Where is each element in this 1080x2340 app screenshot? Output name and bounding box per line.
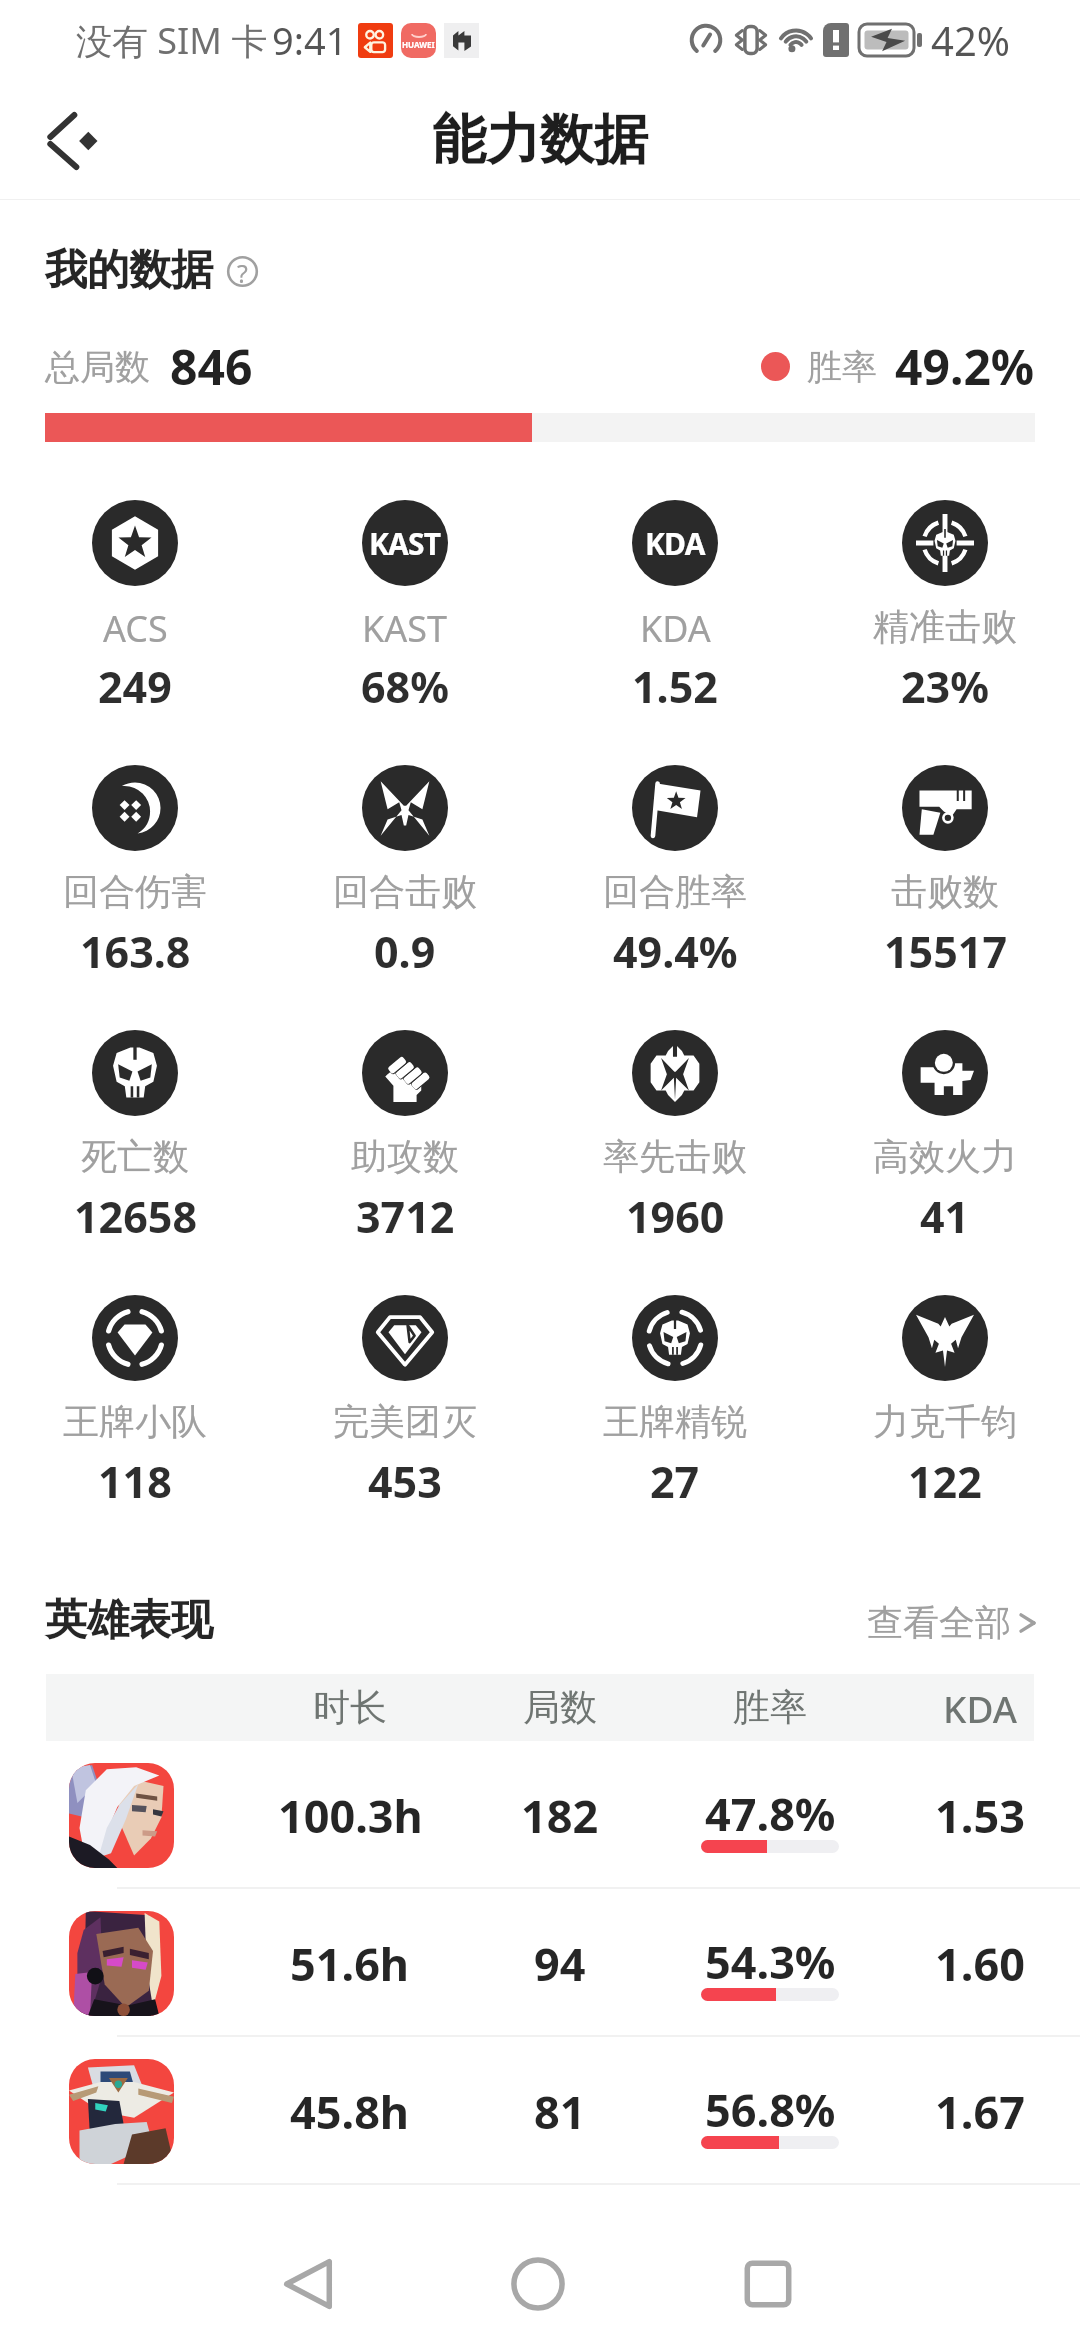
staticText: 胜率 xyxy=(807,345,877,389)
button[interactable]: Back xyxy=(248,2224,368,2340)
staticText: KDA xyxy=(943,1683,1017,1733)
staticText: 41 xyxy=(920,1187,970,1246)
staticText: 49.2% xyxy=(895,334,1035,399)
staticText: 完美团灭 xyxy=(333,1399,477,1444)
staticText: 没有 SIM 卡 xyxy=(76,16,268,65)
staticText: 68% xyxy=(361,657,449,716)
button[interactable]: Back xyxy=(24,98,108,182)
staticText: 1.67 xyxy=(935,2081,1025,2142)
button[interactable]: 回合伤害 xyxy=(0,751,270,1016)
staticText: 力克千钧 xyxy=(873,1399,1017,1444)
button[interactable]: 高效火力 xyxy=(810,1016,1080,1281)
button[interactable]: 查看全部 xyxy=(867,1600,1038,1645)
button[interactable]: KAST xyxy=(270,486,540,751)
staticText: 846 xyxy=(170,334,253,399)
staticText: HUAWEI xyxy=(402,39,435,50)
staticText: 局数 xyxy=(523,1684,597,1731)
staticText: KAST xyxy=(362,604,448,653)
staticText: 时长 xyxy=(313,1684,387,1731)
button[interactable]: 力克千钧 xyxy=(810,1281,1080,1546)
staticText: 查看全部 xyxy=(867,1600,1011,1645)
staticText: 163.8 xyxy=(80,922,191,981)
staticText: 12658 xyxy=(74,1187,197,1246)
button[interactable]: 精准击败 xyxy=(810,486,1080,751)
staticText: 122 xyxy=(908,1452,982,1511)
staticText: 56.8% xyxy=(705,2079,836,2140)
button[interactable]: ACS xyxy=(0,486,270,751)
staticText: ACS xyxy=(103,604,168,653)
button[interactable]: 率先击败 xyxy=(540,1016,810,1281)
staticText: 27 xyxy=(650,1452,700,1511)
button[interactable]: Recents xyxy=(708,2224,828,2340)
staticText: 182 xyxy=(521,1785,599,1846)
staticText: KDA xyxy=(645,523,705,564)
staticText: 453 xyxy=(368,1452,442,1511)
staticText: 49.4% xyxy=(613,922,738,981)
staticText: 15517 xyxy=(884,922,1007,981)
staticText: 总局数 xyxy=(45,345,150,389)
button[interactable]: 王牌精锐 xyxy=(540,1281,810,1546)
staticText: 高效火力 xyxy=(873,1134,1017,1179)
staticText: 1.53 xyxy=(935,1785,1025,1846)
button[interactable]: 助攻数 xyxy=(270,1016,540,1281)
staticText: 1.52 xyxy=(632,657,718,716)
staticText: 94 xyxy=(534,1933,586,1994)
staticText: 45.8h xyxy=(290,2081,410,2142)
staticText: 81 xyxy=(534,2081,586,2142)
staticText: 3712 xyxy=(356,1187,455,1246)
staticText: 249 xyxy=(98,657,172,716)
staticText: 1960 xyxy=(626,1187,725,1246)
button[interactable]: 死亡数 xyxy=(0,1016,270,1281)
staticText: 23% xyxy=(901,657,989,716)
staticText: 118 xyxy=(98,1452,172,1511)
button[interactable]: 100.3h xyxy=(0,1741,1080,1889)
staticText: 王牌小队 xyxy=(63,1399,207,1444)
button[interactable]: Home xyxy=(478,2224,598,2340)
staticText: 54.3% xyxy=(705,1931,836,1992)
staticText: KAST xyxy=(369,523,441,564)
staticText: 助攻数 xyxy=(351,1134,459,1179)
staticText: 胜率 xyxy=(733,1684,807,1731)
staticText: 9:41 xyxy=(272,14,348,66)
staticText: 精准击败 xyxy=(873,604,1017,649)
button[interactable]: 回合胜率 xyxy=(540,751,810,1016)
staticText: 1.60 xyxy=(935,1933,1025,1994)
staticText: 我的数据 xyxy=(45,244,213,297)
staticText: 100.3h xyxy=(278,1785,423,1846)
staticText: 0.9 xyxy=(374,922,436,981)
button[interactable]: 51.6h xyxy=(0,1889,1080,2037)
staticText: 率先击败 xyxy=(603,1134,747,1179)
staticText: 51.6h xyxy=(290,1933,410,1994)
button[interactable]: 王牌小队 xyxy=(0,1281,270,1546)
staticText: 回合伤害 xyxy=(63,869,207,914)
button[interactable]: KDA xyxy=(540,486,810,751)
staticText: 英雄表现 xyxy=(45,1594,213,1647)
button[interactable]: 完美团灭 xyxy=(270,1281,540,1546)
staticText: 回合胜率 xyxy=(603,869,747,914)
staticText: 死亡数 xyxy=(81,1134,189,1179)
button[interactable]: 回合击败 xyxy=(270,751,540,1016)
staticText: 回合击败 xyxy=(333,869,477,914)
staticText: 42% xyxy=(931,13,1010,67)
staticText: ? xyxy=(237,256,248,287)
button[interactable]: 45.8h xyxy=(0,2037,1080,2185)
button[interactable]: 击败数 xyxy=(810,751,1080,1016)
staticText: 47.8% xyxy=(705,1783,836,1844)
staticText: KDA xyxy=(640,604,711,653)
staticText: 击败数 xyxy=(891,869,999,914)
staticText: 能力数据 xyxy=(432,106,648,174)
staticText: 王牌精锐 xyxy=(603,1399,747,1444)
